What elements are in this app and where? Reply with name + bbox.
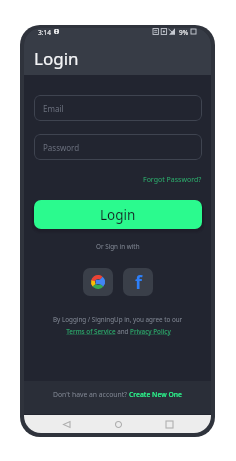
staticText: Create New One	[129, 390, 182, 399]
button[interactable]: Password	[34, 134, 202, 160]
staticText: Forgot Password?	[143, 175, 202, 185]
staticText: Or Sign in with	[96, 242, 140, 251]
button[interactable]: Login	[34, 200, 202, 229]
button[interactable]: Don't have an account?	[24, 381, 211, 414]
staticText: 9%	[179, 28, 189, 35]
staticText: Email	[43, 103, 64, 114]
staticText: By Logging / SigningUp in, you agree to …	[53, 315, 183, 324]
staticText: Don't have an account?	[53, 390, 129, 399]
staticText: f	[135, 270, 142, 295]
button[interactable]: Forgot Password?	[132, 173, 202, 186]
button[interactable]: Home	[109, 415, 127, 433]
staticText: Login	[100, 206, 136, 224]
button[interactable]: Sign in with Facebook	[123, 268, 153, 296]
button[interactable]: Sign in with Google	[83, 268, 113, 296]
button[interactable]: Terms of Service and Privacy Policy	[66, 327, 171, 336]
button[interactable]: Back	[57, 415, 75, 433]
staticText: Password	[43, 142, 80, 153]
button[interactable]: Recents	[160, 415, 178, 433]
staticText: 3:14	[38, 28, 51, 35]
staticText: Login	[34, 47, 79, 70]
button[interactable]: Email	[34, 95, 202, 121]
